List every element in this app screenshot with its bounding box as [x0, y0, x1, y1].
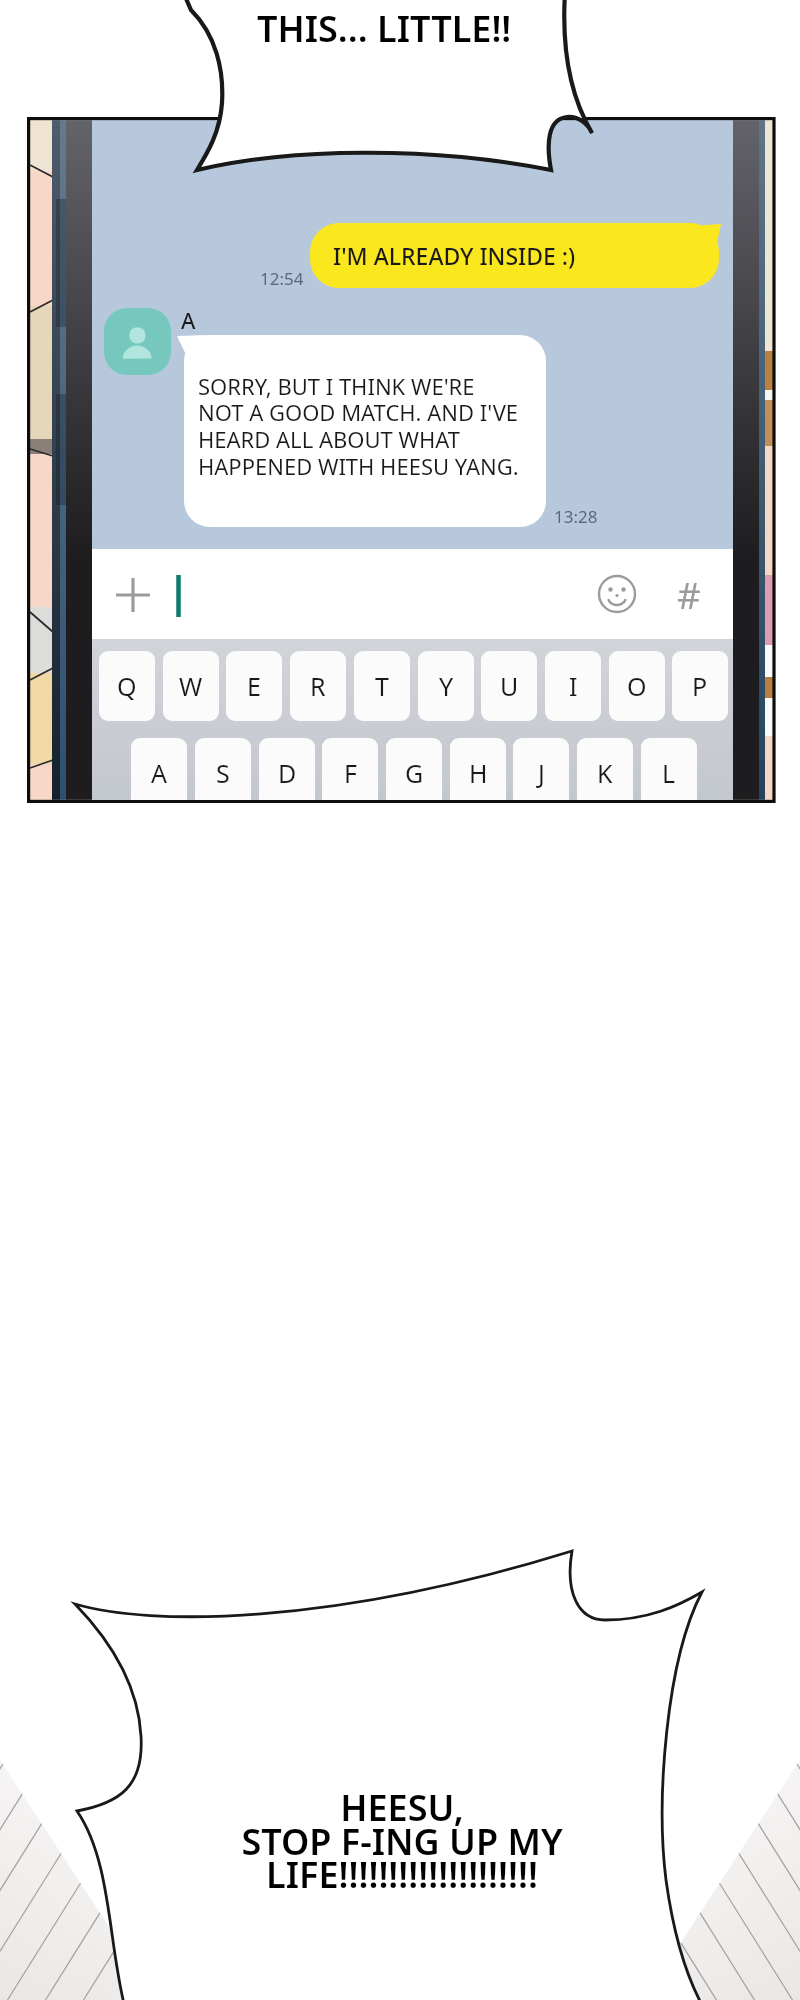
button[interactable]: U — [481, 651, 537, 721]
button[interactable]: G — [386, 738, 442, 800]
staticText: D — [278, 756, 297, 790]
staticText: U — [500, 669, 519, 703]
staticText: THIS... LITTLE!! — [257, 4, 512, 53]
staticText: J — [538, 756, 545, 790]
staticText: P — [692, 669, 708, 703]
staticText: K — [597, 756, 613, 790]
staticText: L — [662, 756, 676, 790]
staticText: G — [405, 756, 424, 790]
staticText: 12:54 — [260, 267, 304, 290]
button[interactable]: A — [131, 738, 187, 800]
button[interactable]: E — [226, 651, 282, 721]
button[interactable]: J — [513, 738, 569, 800]
staticText: E — [247, 669, 261, 703]
button[interactable]: Add attachment — [103, 565, 163, 625]
button[interactable]: I — [545, 651, 601, 721]
staticText: R — [310, 669, 326, 703]
button[interactable]: H — [450, 738, 506, 800]
button[interactable]: R — [290, 651, 346, 721]
button[interactable]: K — [577, 738, 633, 800]
button[interactable]: Hashtag — [645, 550, 733, 638]
staticText: H — [469, 756, 488, 790]
staticText: I'M ALREADY INSIDE :) — [333, 240, 576, 271]
staticText: A — [151, 756, 167, 790]
button[interactable]: Profile avatar — [104, 308, 171, 375]
staticText: Y — [439, 669, 454, 703]
button[interactable]: Y — [418, 651, 474, 721]
staticText: SORRY, BUT I THINK WE'RE NOT A GOOD MATC… — [198, 371, 519, 481]
staticText: A — [181, 305, 196, 335]
button[interactable]: I'M ALREADY INSIDE :) — [310, 223, 720, 288]
staticText: # — [677, 569, 701, 619]
button[interactable]: S — [195, 738, 251, 800]
button[interactable]: F — [322, 738, 378, 800]
staticText: Q — [117, 669, 137, 703]
staticText: I — [569, 669, 578, 703]
button[interactable]: SORRY, BUT I THINK WE'RE NOT A GOOD MATC… — [177, 335, 546, 527]
button[interactable]: Q — [99, 651, 155, 721]
staticText: 13:28 — [554, 505, 598, 528]
button[interactable]: W — [163, 651, 219, 721]
staticText: S — [216, 756, 230, 790]
staticText: W — [179, 669, 203, 703]
button[interactable]: T — [354, 651, 410, 721]
button[interactable]: P — [672, 651, 728, 721]
staticText: O — [627, 669, 647, 703]
staticText: T — [375, 669, 389, 703]
staticText: HEESU, STOP F-ING UP MY LIFE!!!!!!!!!!!!… — [152, 1783, 652, 1898]
staticText: F — [344, 756, 357, 790]
button[interactable]: D — [259, 738, 315, 800]
button[interactable]: O — [609, 651, 665, 721]
button[interactable]: L — [641, 738, 697, 800]
button[interactable]: Emoji — [573, 550, 661, 638]
